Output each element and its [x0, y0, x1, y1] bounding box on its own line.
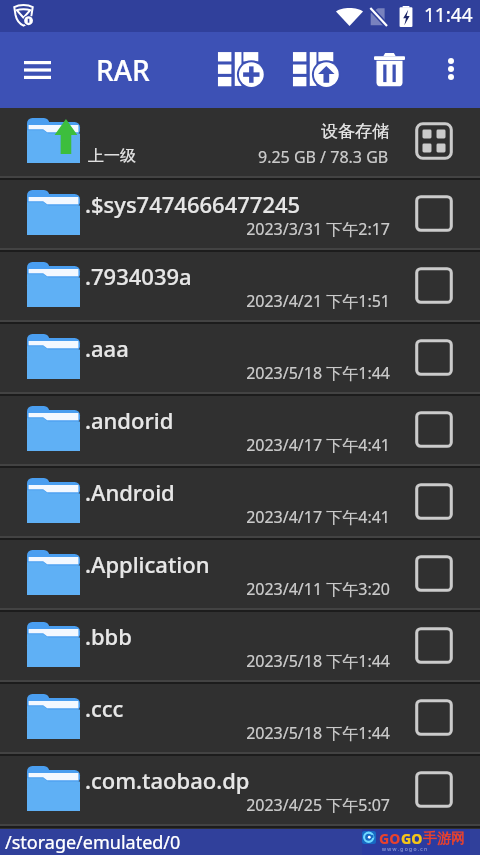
button[interactable]: .aaa: [0, 324, 480, 396]
button[interactable]: .7934039a: [0, 252, 480, 324]
button[interactable]: Select item: [409, 404, 459, 454]
staticText: 2023/4/21 下午1:51: [140, 290, 390, 312]
staticText: .$sys7474666477245: [85, 189, 301, 219]
button[interactable]: More options: [430, 48, 472, 90]
button[interactable]: Select item: [409, 476, 459, 526]
staticText: .bbb: [85, 621, 132, 651]
button[interactable]: Grid view: [409, 116, 459, 166]
button[interactable]: Select item: [409, 764, 459, 814]
staticText: 2023/4/25 下午5:07: [140, 794, 390, 816]
button[interactable]: .ccc: [0, 684, 480, 756]
staticText: w w w . g o g o . c n: [382, 846, 428, 853]
staticText: .7934039a: [85, 261, 192, 291]
staticText: .com.taobao.dp: [85, 765, 250, 795]
button[interactable]: .Application: [0, 540, 480, 612]
staticText: 2023/5/18 下午1:44: [140, 722, 390, 744]
staticText: 2023/5/18 下午1:44: [140, 362, 390, 384]
button[interactable]: Delete: [367, 48, 412, 90]
staticText: 2023/3/31 下午2:17: [140, 218, 390, 240]
staticText: 11:44: [424, 2, 473, 28]
staticText: .Application: [85, 549, 210, 579]
staticText: 设备存储: [321, 121, 389, 142]
button[interactable]: 上一级: [0, 108, 480, 180]
staticText: .ccc: [85, 693, 124, 723]
button[interactable]: .com.taobao.dp: [0, 756, 480, 828]
staticText: 2023/4/11 下午3:20: [140, 578, 390, 600]
staticText: .andorid: [85, 405, 174, 435]
staticText: 手游网: [423, 830, 465, 848]
button[interactable]: Select item: [409, 692, 459, 742]
staticText: 2023/5/18 下午1:44: [140, 650, 390, 672]
button[interactable]: .$sys7474666477245: [0, 180, 480, 252]
button[interactable]: Select item: [409, 332, 459, 382]
staticText: GO: [379, 829, 401, 848]
staticText: RAR: [96, 51, 150, 89]
button[interactable]: Select item: [409, 548, 459, 598]
button[interactable]: Extract archive: [285, 49, 346, 89]
button[interactable]: .bbb: [0, 612, 480, 684]
button[interactable]: .Android: [0, 468, 480, 540]
button[interactable]: Navigation menu: [10, 45, 65, 95]
button[interactable]: Add to archive: [210, 49, 271, 89]
staticText: 2023/4/17 下午4:41: [140, 506, 390, 528]
button[interactable]: Select item: [409, 260, 459, 310]
staticText: .Android: [85, 477, 175, 507]
staticText: 上一级: [88, 146, 136, 166]
staticText: 2023/4/17 下午4:41: [140, 434, 390, 456]
staticText: 9.25 GB / 78.3 GB: [258, 146, 389, 168]
button[interactable]: Select item: [409, 188, 459, 238]
button[interactable]: Select item: [409, 620, 459, 670]
staticText: .aaa: [85, 333, 129, 363]
staticText: /storage/emulated/0: [5, 830, 181, 855]
staticText: GO: [401, 829, 423, 848]
button[interactable]: .andorid: [0, 396, 480, 468]
